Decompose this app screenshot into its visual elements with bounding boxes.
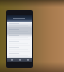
button[interactable] (7, 40, 32, 46)
button[interactable] (7, 22, 32, 28)
button[interactable] (7, 28, 32, 34)
button[interactable] (7, 46, 32, 52)
button[interactable]: Nav 1 (16, 58, 24, 62)
button[interactable]: Nav 0 (7, 58, 16, 62)
button[interactable]: Nav 2 (24, 58, 32, 62)
button[interactable]: Menu (9, 17, 12, 20)
button[interactable] (7, 52, 32, 58)
button[interactable] (7, 34, 32, 40)
